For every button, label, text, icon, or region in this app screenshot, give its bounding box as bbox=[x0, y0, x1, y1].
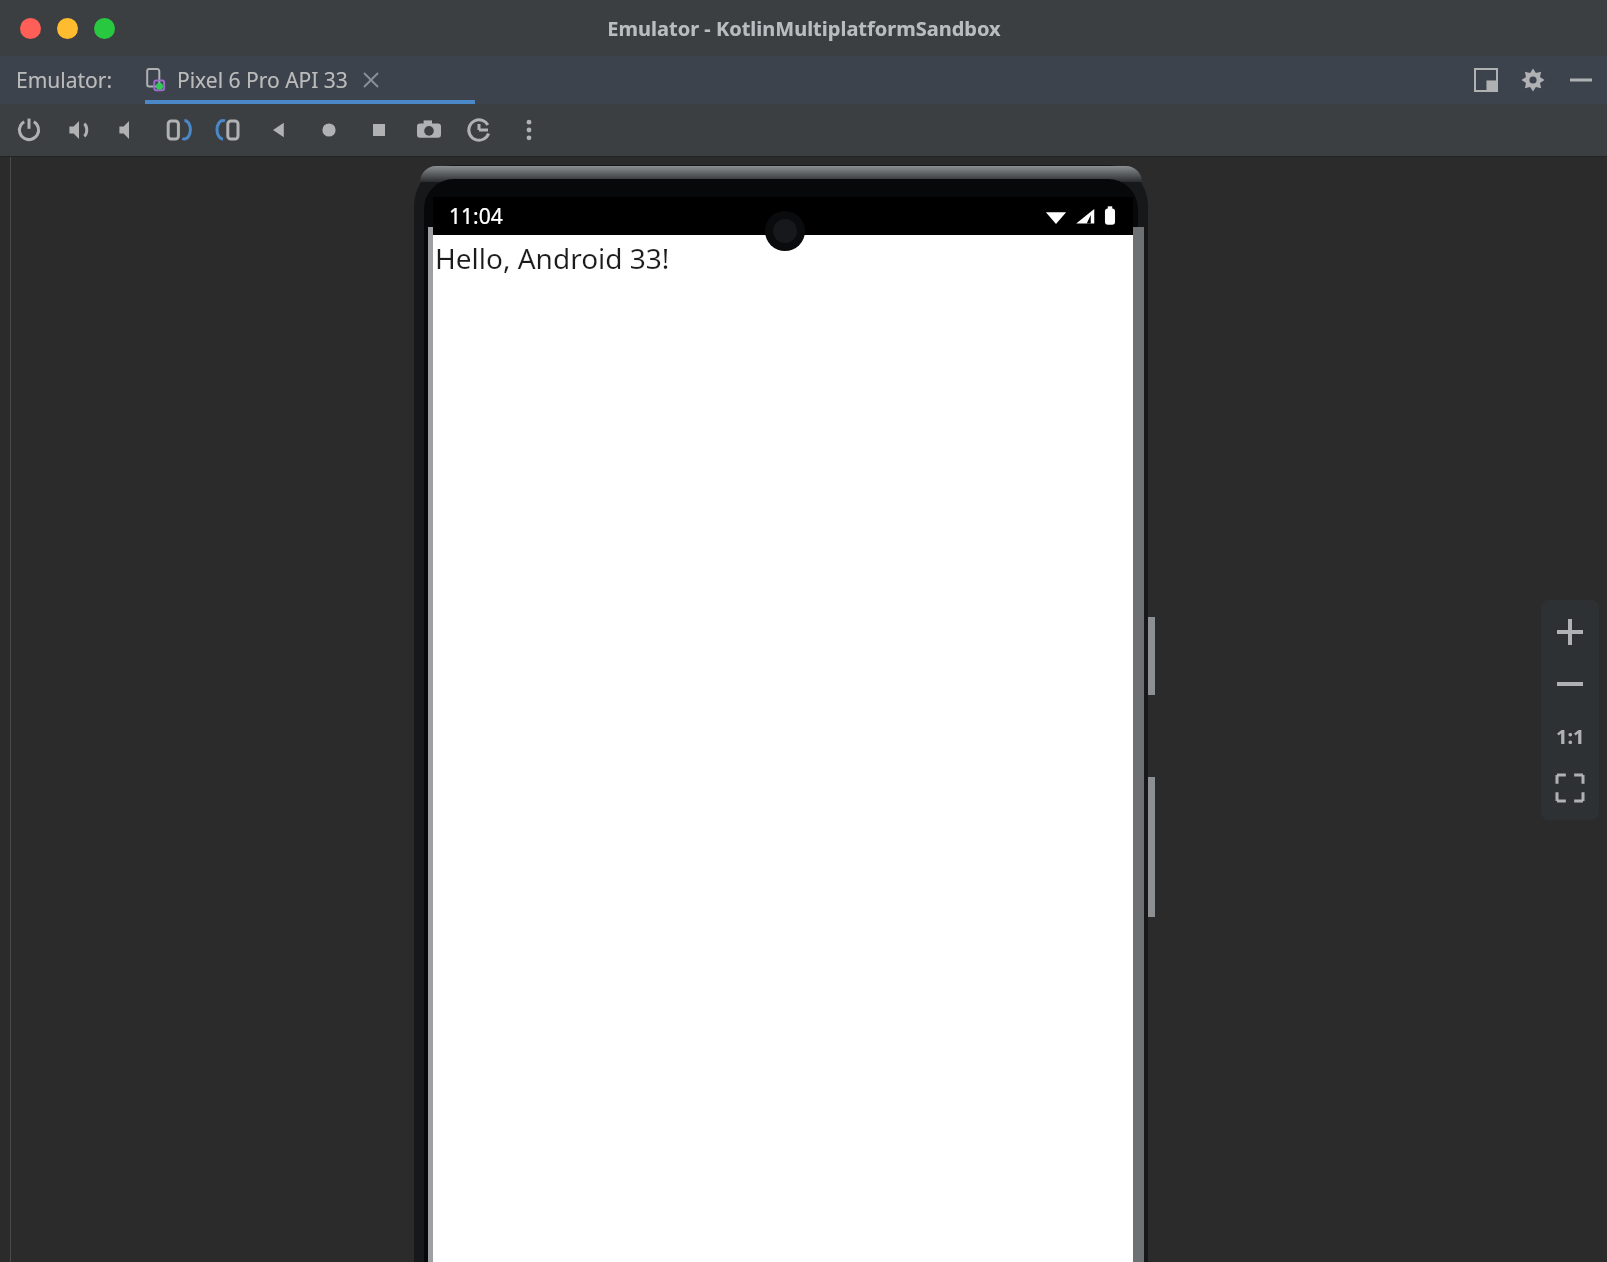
button[interactable]: Pixel 6 Pro API 33 bbox=[145, 56, 380, 104]
button[interactable]: Zoom in bbox=[1544, 606, 1596, 658]
button[interactable]: Settings bbox=[1521, 68, 1545, 92]
button[interactable]: Overview bbox=[364, 115, 394, 145]
button[interactable]: Power bbox=[14, 115, 44, 145]
button[interactable]: Rotate left bbox=[164, 115, 194, 145]
staticText: Pixel 6 Pro API 33 bbox=[177, 66, 348, 95]
button[interactable]: Window mode bbox=[1475, 69, 1497, 91]
button[interactable]: Fit to screen bbox=[1544, 762, 1596, 814]
button[interactable]: Minimize panel bbox=[1569, 68, 1593, 92]
button[interactable]: Back bbox=[264, 115, 294, 145]
button[interactable]: Close tab bbox=[362, 71, 380, 89]
button[interactable]: Close bbox=[20, 18, 41, 39]
button[interactable]: Volume up bbox=[64, 115, 94, 145]
button[interactable]: 1:1 bbox=[1544, 710, 1596, 762]
staticText: 11:04 bbox=[449, 202, 503, 231]
button[interactable]: Screenshot bbox=[414, 115, 444, 145]
button[interactable]: Rollback bbox=[464, 115, 494, 145]
button[interactable]: Volume down bbox=[114, 115, 144, 145]
staticText: Emulator: bbox=[16, 66, 113, 95]
button[interactable]: Maximize bbox=[94, 18, 115, 39]
staticText: 1:1 bbox=[1556, 723, 1585, 750]
button[interactable]: Home bbox=[314, 115, 344, 145]
staticText: Hello, Android 33! bbox=[435, 239, 670, 277]
button[interactable]: More bbox=[514, 115, 544, 145]
button[interactable]: Rotate right bbox=[214, 115, 244, 145]
staticText: Emulator - KotlinMultiplatformSandbox bbox=[607, 15, 1001, 42]
button[interactable]: Minimize bbox=[57, 18, 78, 39]
button[interactable]: Zoom out bbox=[1544, 658, 1596, 710]
